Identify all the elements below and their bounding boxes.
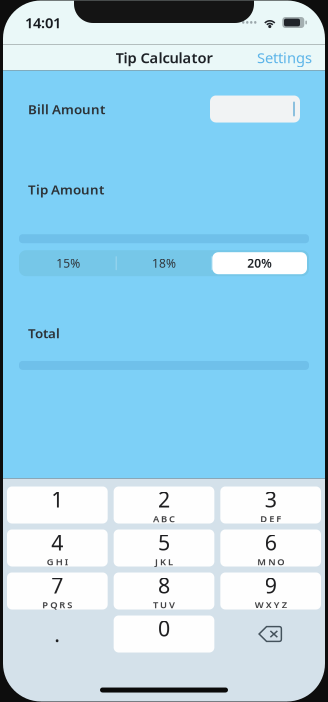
staticText: 1: [51, 485, 63, 513]
button[interactable]: 9: [220, 572, 321, 609]
button[interactable]: 20%: [212, 252, 307, 274]
staticText: 18%: [152, 255, 176, 271]
staticText: ••••: [241, 15, 257, 30]
staticText: 6: [265, 528, 277, 556]
staticText: 20%: [247, 255, 272, 271]
staticText: Bill Amount: [28, 100, 105, 118]
button[interactable]: 1: [7, 486, 108, 523]
staticText: Tip Amount: [28, 180, 104, 198]
button[interactable]: 4: [7, 529, 108, 566]
staticText: 2: [158, 485, 170, 513]
staticText: W X Y Z: [255, 598, 287, 611]
staticText: Settings: [257, 48, 312, 67]
button[interactable]: Settings: [244, 43, 325, 72]
button[interactable]: Delete: [220, 615, 321, 652]
staticText: P Q R S: [42, 598, 72, 611]
staticText: G H I: [47, 555, 68, 568]
staticText: .: [54, 620, 60, 648]
staticText: Total: [28, 324, 60, 342]
staticText: D E F: [260, 512, 281, 525]
button[interactable]: 15%: [21, 252, 116, 274]
staticText: Tip Calculator: [115, 48, 212, 67]
staticText: 7: [51, 571, 63, 599]
staticText: M N O: [257, 555, 284, 568]
button[interactable]: 3: [220, 486, 321, 523]
button[interactable]: Decimal point: [7, 615, 108, 652]
staticText: 3: [265, 485, 277, 513]
button[interactable]: 0: [114, 615, 214, 652]
staticText: A B C: [153, 512, 175, 525]
staticText: 5: [158, 528, 170, 556]
button[interactable]: 7: [7, 572, 108, 609]
button[interactable]: 2: [114, 486, 214, 523]
button[interactable]: 8: [114, 572, 214, 609]
button[interactable]: Bill amount field: [210, 95, 309, 122]
staticText: 4: [51, 528, 63, 556]
button[interactable]: 18%: [117, 252, 211, 274]
button[interactable]: 6: [220, 529, 321, 566]
staticText: T U V: [153, 598, 175, 611]
staticText: 15%: [56, 255, 80, 271]
staticText: 9: [265, 571, 277, 599]
staticText: J K L: [155, 555, 173, 568]
staticText: 0: [158, 614, 170, 642]
staticText: 8: [158, 571, 170, 599]
staticText: 14:01: [25, 13, 61, 32]
button[interactable]: 5: [114, 529, 214, 566]
